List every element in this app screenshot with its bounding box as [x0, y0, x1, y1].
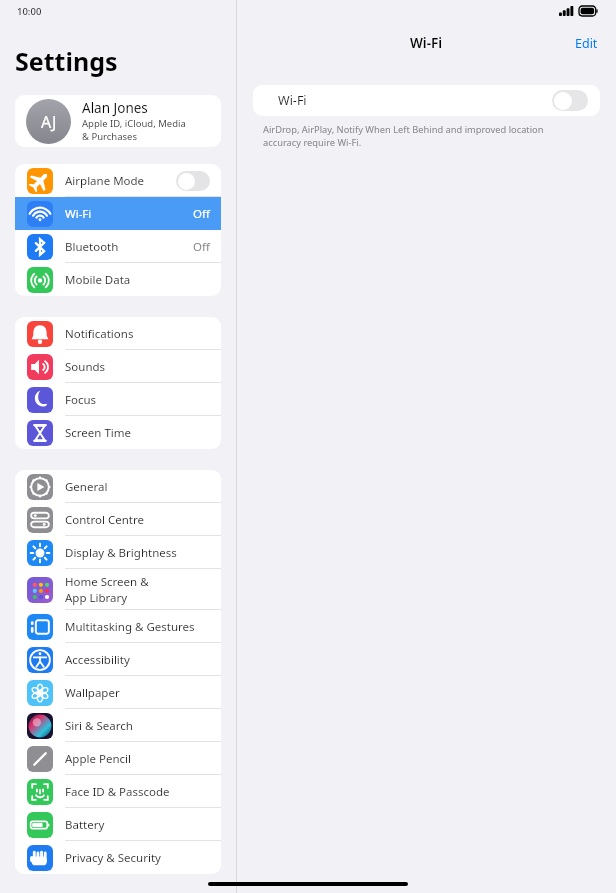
button[interactable]: Wi-Fi toggle [552, 90, 588, 111]
staticText: Mobile Data [65, 272, 131, 288]
staticText: Home Screen & [65, 574, 149, 590]
staticText: Battery [65, 817, 105, 833]
staticText: Control Centre [65, 512, 144, 528]
button[interactable]: Siri & Search [15, 709, 221, 742]
staticText: Notifications [65, 326, 134, 342]
button[interactable]: Wi-Fi [15, 197, 221, 230]
button[interactable]: Accessibility [15, 643, 221, 676]
button[interactable]: Bluetooth [15, 230, 221, 263]
staticText: Apple Pencil [65, 751, 131, 767]
button[interactable]: Wi-Fi [253, 85, 600, 116]
staticText: Settings [15, 44, 118, 78]
staticText: General [65, 479, 108, 495]
staticText: Off [193, 206, 210, 222]
staticText: Accessibility [65, 652, 130, 668]
staticText: Wi-Fi [278, 92, 552, 109]
staticText: Focus [65, 392, 97, 408]
staticText: Edit [575, 35, 598, 52]
staticText: Privacy & Security [65, 850, 161, 866]
staticText: Multitasking & Gestures [65, 619, 195, 635]
staticText: accuracy require Wi-Fi. [263, 136, 362, 149]
staticText: Siri & Search [65, 718, 133, 734]
staticText: Display & Brightness [65, 545, 177, 561]
staticText: 10:00 [17, 5, 42, 18]
button[interactable]: Privacy & Security [15, 841, 221, 874]
button[interactable]: Face ID & Passcode [15, 775, 221, 808]
button[interactable]: AJ [15, 95, 221, 147]
button[interactable]: Display & Brightness [15, 536, 221, 569]
button[interactable]: Multitasking & Gestures [15, 610, 221, 643]
staticText: Off [193, 239, 210, 255]
button[interactable]: Edit [569, 32, 604, 55]
staticText: AirDrop, AirPlay, Notify When Left Behin… [263, 123, 544, 136]
button[interactable]: Airplane Mode [15, 164, 221, 197]
staticText: Wi-Fi [410, 34, 443, 52]
button[interactable]: Sounds [15, 350, 221, 383]
button[interactable]: Notifications [15, 317, 221, 350]
staticText: Alan Jones [82, 99, 148, 117]
staticText: App Library [65, 590, 128, 606]
staticText: Sounds [65, 359, 106, 375]
button[interactable]: General [15, 470, 221, 503]
button[interactable]: Focus [15, 383, 221, 416]
staticText: Wallpaper [65, 685, 120, 701]
staticText: Screen Time [65, 425, 132, 441]
staticText: Apple ID, iCloud, Media [82, 117, 186, 130]
staticText: Airplane Mode [65, 173, 145, 189]
button[interactable]: Apple Pencil [15, 742, 221, 775]
button[interactable]: Control Centre [15, 503, 221, 536]
staticText: & Purchases [82, 130, 137, 143]
button[interactable]: Toggle [176, 171, 210, 191]
staticText: Wi-Fi [65, 206, 92, 222]
button[interactable]: Screen Time [15, 416, 221, 449]
staticText: Face ID & Passcode [65, 784, 170, 800]
staticText: AJ [41, 111, 57, 133]
button[interactable]: Battery [15, 808, 221, 841]
button[interactable]: Mobile Data [15, 263, 221, 296]
staticText: Bluetooth [65, 239, 119, 255]
button[interactable]: Home Screen & [15, 569, 221, 610]
button[interactable]: Wallpaper [15, 676, 221, 709]
